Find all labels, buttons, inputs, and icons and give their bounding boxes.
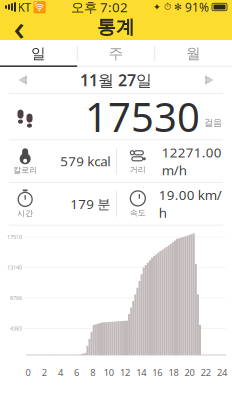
staticText: ✦ bbox=[153, 2, 161, 12]
staticText: ✻ bbox=[174, 2, 182, 12]
staticText: 22 bbox=[201, 366, 211, 379]
staticText: 주 bbox=[108, 44, 123, 62]
staticText: 11월 27일 bbox=[80, 69, 152, 91]
staticText: 13140 bbox=[7, 264, 22, 271]
staticText: 속도 bbox=[130, 208, 146, 218]
staticText: 24 bbox=[217, 366, 227, 379]
staticText: 579 kcal bbox=[60, 152, 110, 170]
staticText: 12271.00 m/h bbox=[162, 143, 222, 179]
staticText: 걸음 bbox=[204, 117, 222, 128]
staticText: 91% bbox=[185, 0, 209, 15]
staticText: 4 bbox=[58, 366, 63, 379]
staticText: 10 bbox=[104, 366, 114, 379]
staticText: 8766 bbox=[10, 294, 22, 301]
staticText: 0 bbox=[26, 366, 31, 379]
button[interactable]: 다음 날짜 bbox=[194, 68, 224, 92]
staticText: 4383 bbox=[10, 325, 22, 332]
staticText: KT bbox=[17, 0, 31, 15]
staticText: 18 bbox=[168, 366, 178, 379]
staticText: 19.00 km/h bbox=[159, 186, 222, 221]
staticText: 2 bbox=[42, 366, 47, 379]
button[interactable]: 이전 날짜 bbox=[8, 68, 38, 92]
staticText: 20 bbox=[185, 366, 195, 379]
staticText: 일 bbox=[31, 44, 46, 62]
button[interactable]: 일 bbox=[0, 40, 77, 67]
staticText: 월 bbox=[186, 44, 201, 62]
button[interactable]: 월 bbox=[155, 40, 232, 67]
staticText: 통계 bbox=[97, 15, 135, 38]
staticText: 17510 bbox=[7, 233, 22, 240]
staticText: 179 분 bbox=[70, 195, 110, 213]
staticText: 8 bbox=[90, 366, 95, 379]
staticText: 🛜 bbox=[33, 1, 46, 13]
staticText: 오후 7:02 bbox=[71, 0, 128, 16]
staticText: 칼로리 bbox=[13, 165, 37, 175]
staticText: 거리 bbox=[130, 165, 146, 175]
staticText: 16 bbox=[152, 366, 162, 379]
staticText: 17530 bbox=[85, 90, 200, 143]
staticText: 시간 bbox=[17, 208, 33, 218]
staticText: ‹ bbox=[13, 4, 24, 50]
button[interactable]: 뒤로 bbox=[0, 14, 38, 40]
staticText: 12 bbox=[120, 366, 130, 379]
staticText: 14 bbox=[136, 366, 146, 379]
staticText: 6 bbox=[74, 366, 79, 379]
button[interactable]: 주 bbox=[78, 40, 154, 67]
staticText: ⏱ bbox=[164, 2, 171, 11]
